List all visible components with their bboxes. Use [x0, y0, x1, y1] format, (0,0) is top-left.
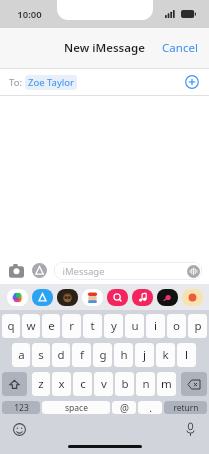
staticText: u — [131, 318, 139, 334]
staticText: s — [38, 347, 44, 363]
button[interactable]: . — [138, 401, 162, 414]
staticText: p — [194, 318, 202, 334]
button[interactable]: e — [42, 314, 60, 338]
staticText: New iMessage — [64, 40, 145, 56]
staticText: i — [154, 318, 157, 334]
staticText: z — [38, 376, 44, 392]
button[interactable]: t — [83, 314, 102, 338]
button[interactable]: c — [73, 372, 92, 396]
button[interactable]: App 3 — [82, 289, 103, 306]
staticText: a — [18, 347, 25, 363]
staticText: m — [161, 376, 172, 392]
staticText: h — [120, 347, 128, 363]
staticText: o — [173, 318, 180, 334]
staticText: iMessage — [62, 265, 105, 278]
button[interactable]: i — [146, 314, 165, 338]
button[interactable]: b — [115, 372, 134, 396]
button[interactable]: v — [94, 372, 113, 396]
button[interactable]: p — [188, 314, 207, 338]
staticText: c — [80, 376, 86, 392]
button[interactable]: o — [167, 314, 186, 338]
button[interactable]: @ — [112, 401, 136, 414]
staticText: @ — [120, 401, 129, 414]
staticText: space — [65, 402, 88, 414]
button[interactable]: d — [52, 343, 70, 367]
staticText: Zoe Taylor — [28, 76, 74, 89]
button[interactable]: q — [2, 314, 20, 338]
button[interactable]: App 0 — [7, 289, 28, 306]
button[interactable]: App 5 — [132, 289, 153, 306]
button[interactable]: Cancel — [151, 32, 209, 64]
staticText: e — [48, 318, 55, 334]
staticText: v — [101, 376, 107, 392]
button[interactable]: iMessage — [54, 262, 202, 280]
button[interactable]: Camera — [7, 261, 26, 280]
staticText: To: — [9, 76, 22, 89]
button[interactable]: m — [157, 372, 176, 396]
button[interactable]: u — [125, 314, 144, 338]
staticText: b — [121, 376, 129, 392]
staticText: d — [57, 347, 65, 363]
button[interactable]: k — [156, 343, 175, 367]
button[interactable]: App 7 — [182, 289, 203, 306]
button[interactable]: g — [93, 343, 112, 367]
button[interactable]: z — [32, 372, 50, 396]
button[interactable]: Add contact — [183, 73, 201, 91]
staticText: r — [69, 318, 74, 334]
button[interactable]: n — [136, 372, 155, 396]
button[interactable]: j — [135, 343, 154, 367]
staticText: l — [185, 347, 188, 363]
button[interactable]: h — [114, 343, 133, 367]
button[interactable]: return — [164, 401, 207, 414]
staticText: f — [80, 347, 84, 363]
button[interactable]: s — [32, 343, 50, 367]
staticText: return — [173, 402, 199, 414]
button[interactable]: App 1 — [32, 289, 53, 306]
staticText: q — [7, 318, 15, 334]
staticText: y — [111, 318, 117, 334]
staticText: 10:00 — [17, 8, 42, 21]
staticText: j — [143, 347, 146, 363]
staticText: x — [58, 376, 65, 392]
button[interactable]: Emoji — [10, 420, 28, 438]
button[interactable]: To: — [0, 69, 209, 95]
staticText: n — [142, 376, 150, 392]
button[interactable]: y — [104, 314, 123, 338]
staticText: g — [99, 347, 107, 363]
staticText: Cancel — [162, 40, 198, 56]
button[interactable]: w — [22, 314, 40, 338]
button[interactable]: space — [42, 401, 110, 414]
button[interactable]: Dictation — [181, 420, 199, 438]
button[interactable]: Audio message — [186, 264, 200, 278]
button[interactable]: App 4 — [107, 289, 128, 306]
staticText: w — [26, 318, 36, 334]
button[interactable]: x — [52, 372, 71, 396]
staticText: 123 — [14, 402, 29, 414]
button[interactable]: Backspace — [181, 372, 207, 396]
button[interactable]: Apps — [30, 261, 49, 280]
button[interactable]: App 2 — [57, 289, 78, 306]
staticText: k — [162, 347, 169, 363]
button[interactable]: f — [72, 343, 91, 367]
button[interactable]: Shift — [2, 372, 27, 396]
staticText: t — [90, 318, 95, 334]
button[interactable]: App 6 — [157, 289, 178, 306]
button[interactable]: 123 — [2, 401, 40, 414]
staticText: . — [149, 401, 152, 414]
button[interactable]: r — [62, 314, 81, 338]
button[interactable]: a — [12, 343, 30, 367]
button[interactable]: l — [177, 343, 196, 367]
